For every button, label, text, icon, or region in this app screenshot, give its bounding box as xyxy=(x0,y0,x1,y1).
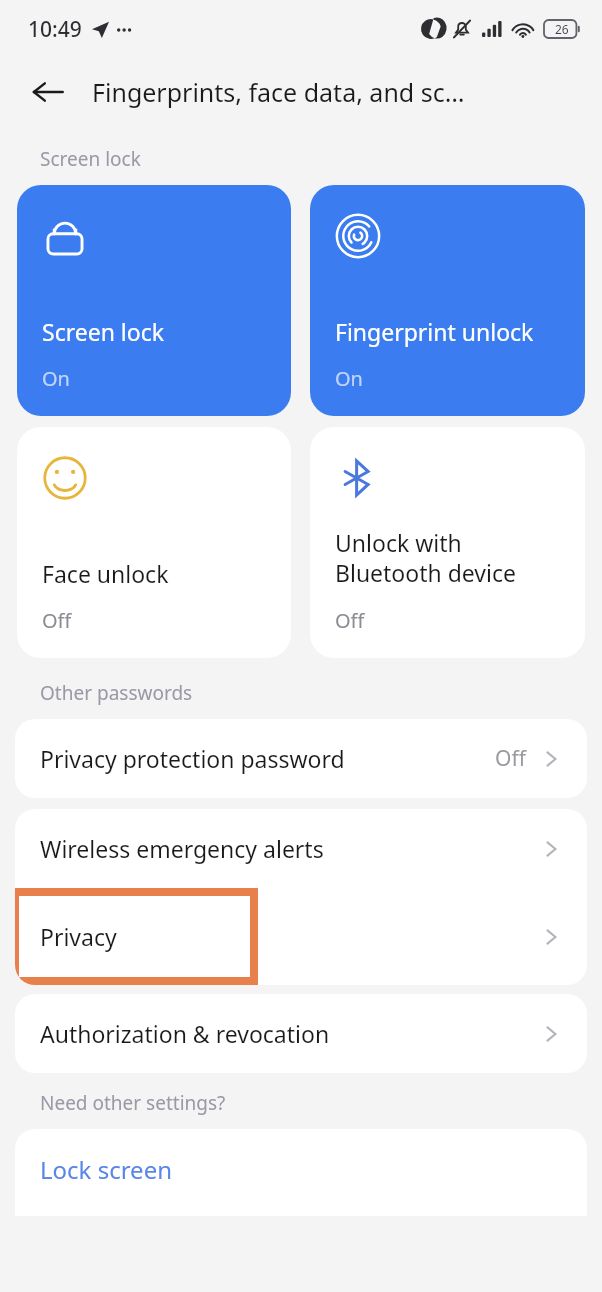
staticText: Lock screen xyxy=(40,1153,173,1186)
staticText: Fingerprint unlock xyxy=(335,316,534,347)
button[interactable]: Lock screen xyxy=(15,1129,587,1216)
button[interactable]: Fingerprint unlock xyxy=(310,185,585,416)
button[interactable]: Wireless emergency alerts xyxy=(15,809,587,888)
staticText: Authorization & revocation xyxy=(40,1018,330,1049)
other: Unlock with Bluetooth device xyxy=(335,455,381,501)
other: Fingerprint unlock xyxy=(335,213,381,259)
staticText: 26 xyxy=(555,21,569,37)
staticText: Privacy protection password xyxy=(40,743,345,774)
staticText: Wireless emergency alerts xyxy=(40,833,324,864)
staticText: Off xyxy=(495,744,526,773)
other: Face unlock xyxy=(42,455,88,501)
button[interactable]: Screen lock xyxy=(17,185,291,416)
button[interactable]: Face unlock xyxy=(17,427,291,658)
staticText: Off xyxy=(335,607,365,634)
staticText: 10:49 xyxy=(28,15,82,44)
staticText: Need other settings? xyxy=(40,1090,226,1116)
button[interactable]: Privacy xyxy=(15,888,587,985)
staticText: Off xyxy=(42,607,72,634)
staticText: On xyxy=(42,365,70,392)
staticText: Privacy xyxy=(40,921,117,952)
staticText: Face unlock xyxy=(42,558,169,589)
button[interactable]: Back xyxy=(22,66,74,118)
button[interactable]: Unlock with Bluetooth device xyxy=(310,427,585,658)
staticText: Unlock with Bluetooth device xyxy=(335,527,516,589)
staticText: Screen lock xyxy=(40,146,141,172)
button[interactable]: Privacy protection password xyxy=(15,719,587,798)
staticText: On xyxy=(335,365,363,392)
staticText: Other passwords xyxy=(40,680,193,706)
button[interactable]: Authorization & revocation xyxy=(15,994,587,1073)
staticText: Fingerprints, face data, and sc… xyxy=(92,75,465,109)
other: Screen lock xyxy=(42,213,88,259)
staticText: Screen lock xyxy=(42,316,165,347)
